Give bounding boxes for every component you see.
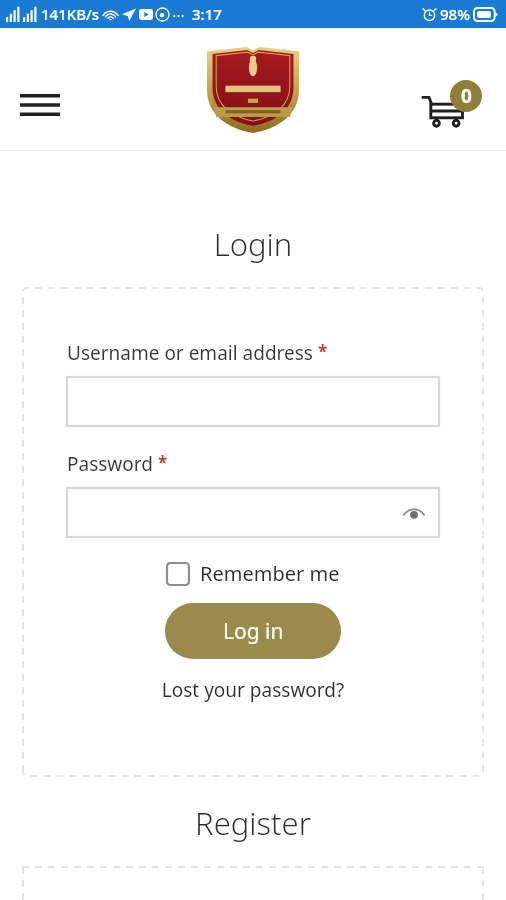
staticText: Username or email address: [67, 340, 313, 366]
button[interactable]: Lost your password?: [67, 677, 439, 703]
staticText: *: [318, 340, 328, 363]
staticText: 141KB/s: [41, 4, 100, 24]
staticText: 98%: [440, 4, 470, 24]
staticText: Login: [0, 223, 506, 265]
button[interactable]: Remember me: [67, 560, 439, 587]
button[interactable]: Menu: [12, 84, 68, 126]
staticText: Password: [67, 451, 153, 477]
button[interactable]: Show password: [401, 500, 427, 526]
staticText: *: [158, 451, 168, 474]
button[interactable]: Show password: [67, 488, 439, 537]
button[interactable]: Log in: [165, 603, 341, 659]
button[interactable]: Sona Saree home: [207, 47, 299, 133]
staticText: Register: [0, 802, 506, 844]
staticText: Remember me: [200, 560, 340, 587]
staticText: 3:17: [192, 4, 222, 24]
staticText: 0: [461, 83, 472, 109]
button[interactable]: Cart, 0 items: [414, 80, 490, 134]
staticText: Log in: [223, 617, 284, 646]
button[interactable]: [67, 377, 439, 426]
